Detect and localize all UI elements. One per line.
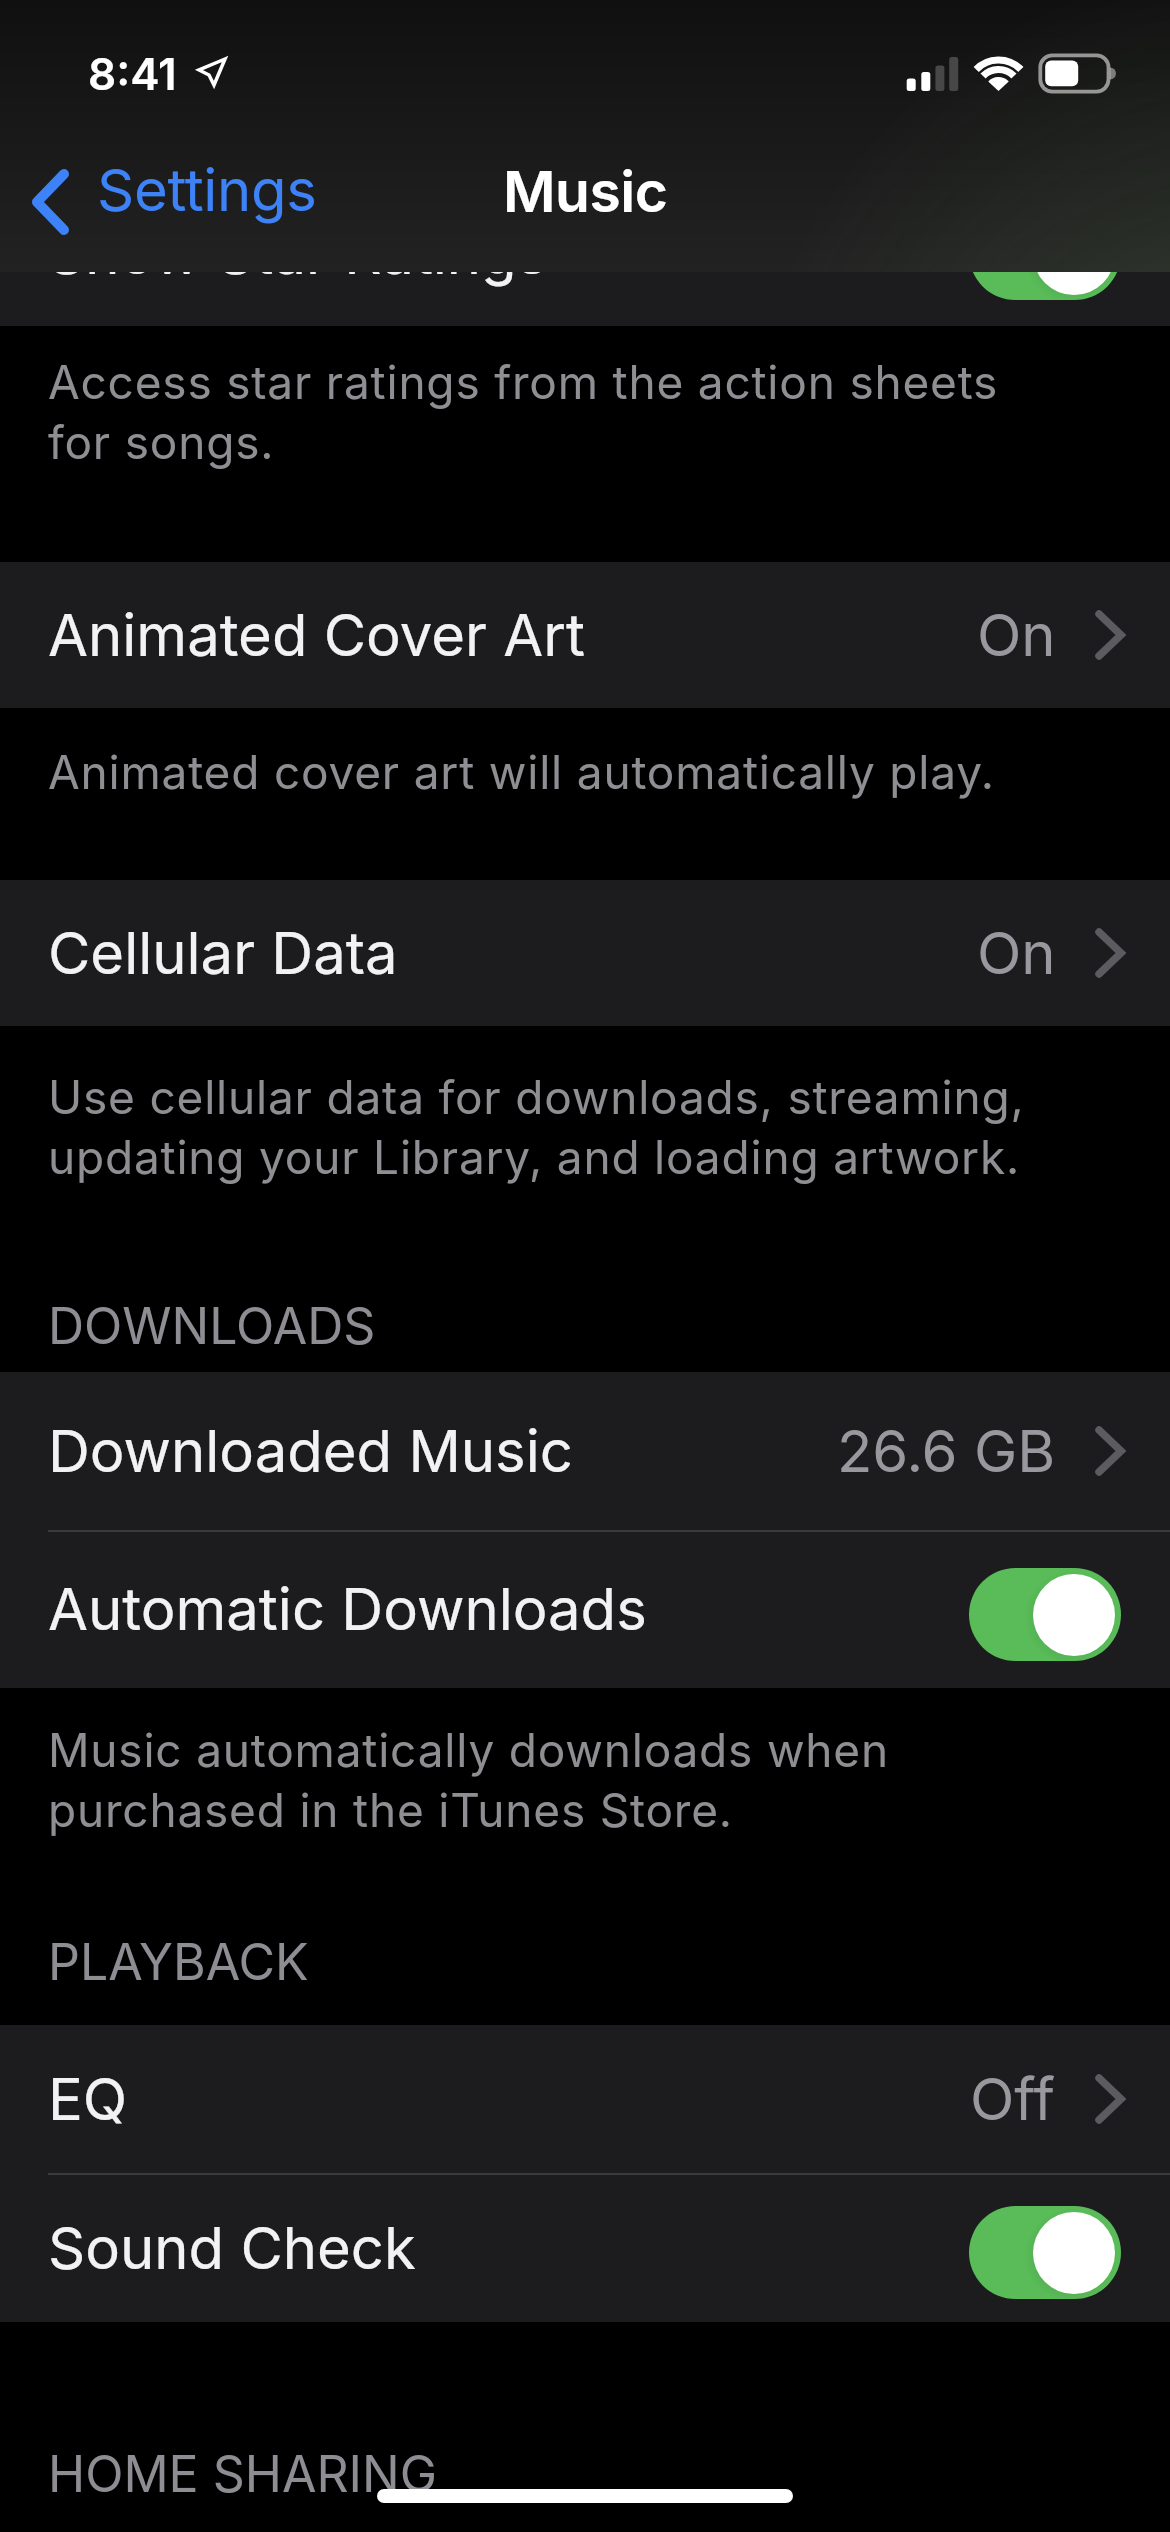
staticText: On — [977, 918, 1056, 988]
staticText: Cellular Data — [48, 918, 398, 988]
staticText: Show Star Ratings — [48, 218, 548, 288]
staticText: Animated cover art will automatically pl… — [48, 744, 995, 800]
staticText: Use cellular data for downloads, streami… — [48, 1069, 1025, 1185]
staticText: PLAYBACK — [48, 1932, 309, 1992]
button[interactable] — [30, 169, 70, 235]
button[interactable]: Downloaded Music — [0, 1372, 1170, 1530]
staticText: Sound Check — [48, 2213, 416, 2283]
button[interactable]: EQ — [0, 2025, 1170, 2173]
button[interactable]: Sound Check — [0, 2173, 1170, 2322]
staticText: Downloaded Music — [48, 1416, 573, 1486]
staticText: DOWNLOADS — [48, 1296, 376, 1356]
button[interactable]: Cellular Data — [0, 880, 1170, 1026]
button[interactable]: Settings — [97, 155, 317, 225]
staticText: Music automatically downloads when purch… — [48, 1722, 889, 1838]
button[interactable]: Animated Cover Art — [0, 562, 1170, 708]
staticText: 26.6 GB — [837, 1416, 1056, 1486]
button[interactable] — [969, 207, 1121, 300]
staticText: Automatic Downloads — [48, 1574, 647, 1644]
staticText: Off — [970, 2064, 1056, 2134]
staticText: Animated Cover Art — [48, 600, 585, 670]
staticText: 8:41 — [88, 47, 177, 100]
button[interactable]: Show Star Ratings — [0, 180, 1170, 326]
staticText: On — [977, 600, 1056, 670]
button[interactable]: Automatic Downloads — [0, 1530, 1170, 1688]
staticText: Music — [503, 157, 668, 226]
staticText: HOME SHARING — [48, 2444, 437, 2504]
button[interactable] — [969, 2206, 1121, 2299]
button[interactable] — [969, 1568, 1121, 1661]
staticText: Access star ratings from the action shee… — [48, 354, 999, 470]
staticText: EQ — [48, 2064, 128, 2134]
